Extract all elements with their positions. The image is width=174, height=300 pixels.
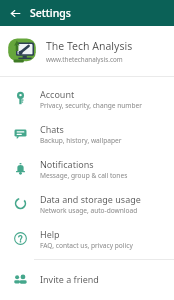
staticText: The Tech Analysis	[46, 39, 133, 53]
button[interactable]: Invite a friend	[0, 262, 174, 296]
button[interactable]: Data and storage usage	[0, 186, 174, 221]
button[interactable]: The Tech Analysis	[0, 26, 174, 76]
button[interactable]: Notifications	[0, 151, 174, 186]
staticText: Privacy, security, change number	[40, 101, 143, 110]
button[interactable]: Back	[0, 0, 30, 26]
button[interactable]: Chats	[0, 116, 174, 151]
staticText: Notifications	[40, 158, 94, 170]
button[interactable]: Help	[0, 221, 174, 256]
button[interactable]: Account	[0, 81, 174, 116]
staticText: Backup, history, wallpaper	[40, 136, 122, 145]
staticText: FAQ, contact us, privacy policy	[40, 241, 133, 250]
staticText: Invite a friend	[40, 273, 99, 285]
staticText: Chats	[40, 123, 64, 135]
staticText: Settings	[30, 6, 71, 20]
staticText: Message, group & call tones	[40, 171, 128, 180]
staticText: www.thetechanalysis.com	[46, 55, 123, 64]
staticText: Data and storage usage	[40, 193, 141, 205]
staticText: Help	[40, 228, 60, 240]
staticText: Network usage, auto-download	[40, 206, 138, 215]
staticText: Account	[40, 88, 75, 100]
